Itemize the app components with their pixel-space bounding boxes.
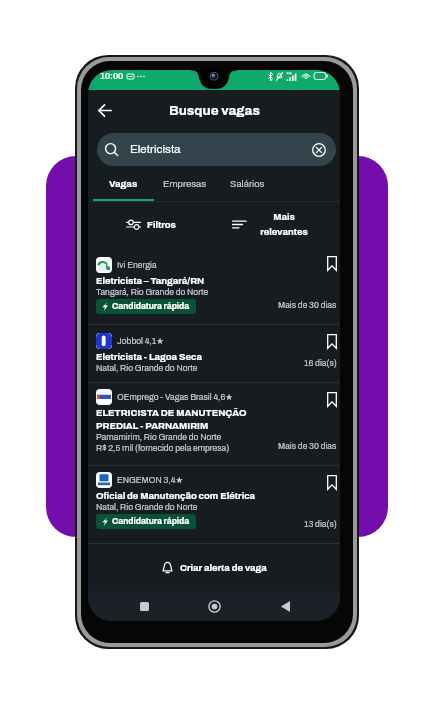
- button[interactable]: Salvar vaga: [327, 256, 337, 271]
- button[interactable]: OEmprego - Vagas Brasil 4,6★: [88, 383, 340, 465]
- staticText: 16 dia(s): [304, 359, 337, 368]
- button[interactable]: Início: [199, 591, 229, 621]
- staticText: Criar alerta de vaga: [180, 563, 267, 573]
- button[interactable]: Jobbol 4,1★: [88, 325, 340, 382]
- staticText: R$ 2,5 mil (fornecido pela empresa): [96, 444, 230, 453]
- staticText: Salários: [230, 179, 265, 189]
- button[interactable]: Mais relevantes: [206, 202, 333, 247]
- button[interactable]: Limpar busca: [312, 143, 326, 157]
- button[interactable]: Salvar vaga: [327, 392, 337, 407]
- button[interactable]: Salários: [215, 170, 280, 202]
- button[interactable]: Recentes: [129, 591, 159, 621]
- staticText: Candidatura rápida: [112, 517, 190, 526]
- staticText: Eletricista – Tangará/RN: [96, 276, 205, 286]
- button[interactable]: Vagas: [93, 170, 154, 202]
- staticText: OEmprego - Vagas Brasil 4,6★: [117, 392, 233, 402]
- button[interactable]: Voltar: [270, 591, 300, 621]
- staticText: ENGEMON 3,4★: [117, 475, 184, 485]
- button[interactable]: Filtros: [88, 202, 213, 247]
- button[interactable]: Criar alerta de vaga: [88, 544, 340, 591]
- staticText: Eletricista: [130, 143, 181, 156]
- button[interactable]: Ivi Energia: [88, 247, 340, 324]
- staticText: Parnamirim, Rio Grande do Norte: [96, 433, 222, 442]
- staticText: Vagas: [109, 179, 138, 189]
- staticText: Oficial de Manutenção com Elétrica: [96, 491, 256, 501]
- staticText: Mais de 30 dias: [278, 301, 337, 310]
- staticText: Busque vagas: [169, 103, 260, 118]
- staticText: Candidatura rápida: [112, 302, 190, 311]
- staticText: Natal, Rio Grande do Norte: [96, 364, 198, 373]
- button[interactable]: Voltar: [91, 96, 119, 124]
- staticText: Mais de 30 dias: [278, 442, 337, 451]
- staticText: Filtros: [147, 220, 176, 230]
- staticText: ELETRICISTA DE MANUTENÇÃO PREDIAL - PARN…: [96, 408, 247, 431]
- button[interactable]: Eletricista: [97, 133, 336, 166]
- staticText: Empresas: [163, 179, 207, 189]
- staticText: 13 dia(s): [304, 520, 337, 529]
- staticText: Tangará, Rio Grande do Norte: [96, 288, 209, 297]
- button[interactable]: ENGEMON 3,4★: [88, 466, 340, 543]
- staticText: Jobbol 4,1★: [117, 336, 164, 346]
- button[interactable]: Salvar vaga: [327, 334, 337, 349]
- button[interactable]: Salvar vaga: [327, 475, 337, 490]
- staticText: Eletricista - Lagoa Seca: [96, 352, 202, 362]
- staticText: Natal, Rio Grande do Norte: [96, 503, 198, 512]
- staticText: 10:00: [100, 71, 124, 81]
- staticText: Ivi Energia: [117, 261, 157, 270]
- staticText: Mais relevantes: [260, 212, 308, 237]
- button[interactable]: Empresas: [154, 170, 215, 202]
